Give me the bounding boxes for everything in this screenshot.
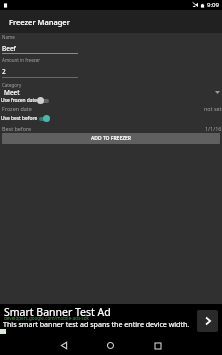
button[interactable]: ADD TO FREEZER: [2, 133, 220, 144]
staticText: 1/1/16: [205, 125, 222, 132]
button[interactable]: Use best before: [0, 114, 222, 123]
button[interactable]: Use frozen date: [0, 96, 222, 105]
button[interactable]: Home: [100, 336, 121, 355]
staticText: Smart Banner Test Ad: [4, 305, 111, 319]
button[interactable]: Frozen date: [0, 104, 222, 112]
staticText: Use best before: [1, 115, 38, 122]
staticText: This smart banner test ad spans the enti…: [3, 319, 190, 329]
staticText: Meet: [4, 88, 20, 97]
staticText: Best before: [2, 125, 32, 132]
button[interactable]: Back: [53, 336, 74, 355]
staticText: Amount in freezer: [2, 57, 41, 63]
staticText: Beef: [2, 44, 16, 53]
staticText: Use frozen date: [1, 97, 38, 104]
button[interactable]: [0, 85, 222, 96]
button[interactable]: Best before: [0, 124, 222, 132]
staticText: not set: [204, 105, 222, 112]
staticText: Category: [2, 82, 22, 88]
staticText: Freezer Manager: [9, 17, 70, 27]
staticText: Name: [2, 34, 15, 40]
button[interactable]: Recent apps: [147, 336, 168, 355]
staticText: Frozen date: [2, 105, 32, 112]
staticText: 2: [2, 67, 6, 76]
button[interactable]: Open ad: [197, 310, 218, 332]
staticText: ADD TO FREEZER: [91, 135, 132, 142]
staticText: developers.google.com/mobile-ads-sdk: [4, 315, 90, 321]
staticText: 9:09: [207, 1, 219, 9]
